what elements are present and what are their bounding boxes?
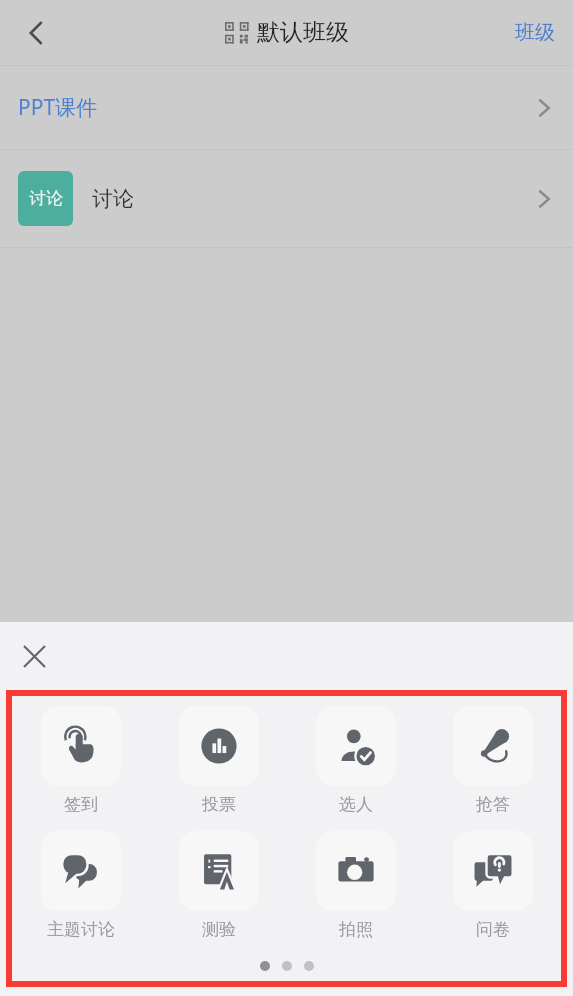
staticText: 讨论 [29,188,63,209]
staticText: 主题讨论 [47,919,115,940]
button[interactable]: 问卷 [451,829,535,942]
button[interactable]: 主题讨论 [39,829,123,942]
staticText: 拍照 [339,919,373,940]
button[interactable]: 讨论 [0,150,573,247]
staticText: 投票 [202,794,236,815]
staticText: 讨论 [92,186,134,212]
button[interactable]: 班级 [507,14,563,51]
button[interactable]: 投票 [177,704,261,817]
staticText: 抢答 [476,794,510,815]
button[interactable]: 测验 [177,829,261,942]
staticText: 选人 [339,794,373,815]
staticText: PPT课件 [18,93,98,122]
staticText: 默认班级 [257,18,349,47]
staticText: 问卷 [476,919,510,940]
button[interactable]: Back [8,5,64,61]
button[interactable]: 抢答 [451,704,535,817]
button[interactable]: PPT课件 [0,66,573,149]
button[interactable]: Close [12,634,56,678]
staticText: 班级 [515,20,555,45]
button[interactable]: 拍照 [314,829,398,942]
staticText: 测验 [202,919,236,940]
button[interactable]: 选人 [314,704,398,817]
button[interactable]: 签到 [39,704,123,817]
staticText: 签到 [64,794,98,815]
